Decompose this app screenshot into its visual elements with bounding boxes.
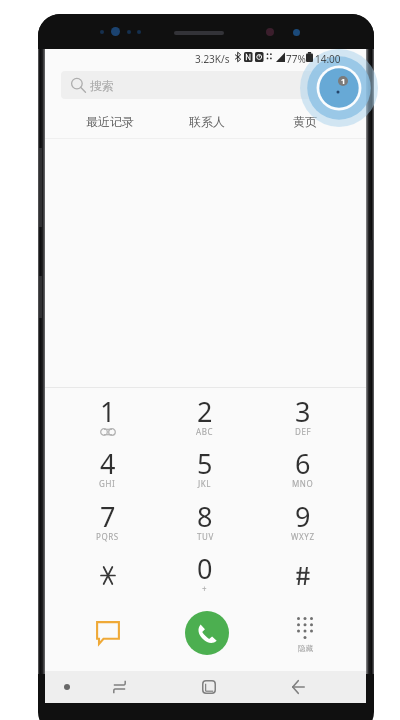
- button[interactable]: Call: [156, 605, 254, 661]
- button[interactable]: 4: [59, 440, 156, 492]
- button[interactable]: 5: [156, 440, 254, 492]
- button[interactable]: 1: [59, 388, 156, 440]
- button[interactable]: 9: [254, 493, 352, 545]
- staticText: 1: [341, 76, 346, 86]
- button[interactable]: 最近记录: [68, 105, 152, 138]
- button[interactable]: 3: [254, 388, 352, 440]
- staticText: TUV: [197, 531, 214, 542]
- staticText: 0: [197, 550, 213, 587]
- staticText: 4: [100, 445, 116, 482]
- staticText: 7: [100, 498, 116, 535]
- button[interactable]: 联系人: [165, 105, 249, 138]
- button[interactable]: 2: [156, 388, 254, 440]
- button[interactable]: [254, 545, 352, 597]
- staticText: 隐藏: [298, 644, 313, 653]
- staticText: ABC: [196, 426, 214, 437]
- staticText: GHI: [99, 478, 116, 489]
- button[interactable]: [59, 545, 156, 597]
- staticText: 5: [197, 445, 213, 482]
- staticText: JKL: [198, 478, 212, 489]
- staticText: 2: [197, 393, 213, 430]
- button[interactable]: Back: [272, 671, 322, 703]
- staticText: 9: [295, 498, 311, 535]
- staticText: 3: [295, 393, 311, 430]
- button[interactable]: 搜索: [61, 71, 353, 99]
- button[interactable]: Home: [183, 671, 233, 703]
- staticText: 1: [100, 393, 116, 430]
- button[interactable]: More options: [48, 671, 86, 703]
- staticText: WXYZ: [291, 531, 315, 542]
- button[interactable]: 黄页: [263, 105, 347, 138]
- staticText: 3.23K/s: [195, 52, 230, 66]
- staticText: DEF: [295, 426, 312, 437]
- staticText: PQRS: [96, 531, 119, 542]
- staticText: 77%: [286, 52, 306, 66]
- button[interactable]: 7: [59, 493, 156, 545]
- staticText: 最近记录: [86, 114, 134, 129]
- staticText: 14:00: [315, 52, 341, 66]
- button[interactable]: 6: [254, 440, 352, 492]
- button[interactable]: 0: [156, 545, 254, 597]
- button[interactable]: Send message: [59, 605, 156, 661]
- staticText: 联系人: [189, 114, 225, 129]
- staticText: 黄页: [293, 114, 317, 129]
- staticText: 搜索: [90, 78, 114, 93]
- staticText: +: [202, 583, 208, 594]
- staticText: 6: [295, 445, 311, 482]
- button[interactable]: Recent apps: [93, 671, 143, 703]
- button[interactable]: Hide keypad: [254, 605, 352, 661]
- staticText: MNO: [292, 478, 314, 489]
- staticText: 8: [197, 498, 213, 535]
- button[interactable]: 8: [156, 493, 254, 545]
